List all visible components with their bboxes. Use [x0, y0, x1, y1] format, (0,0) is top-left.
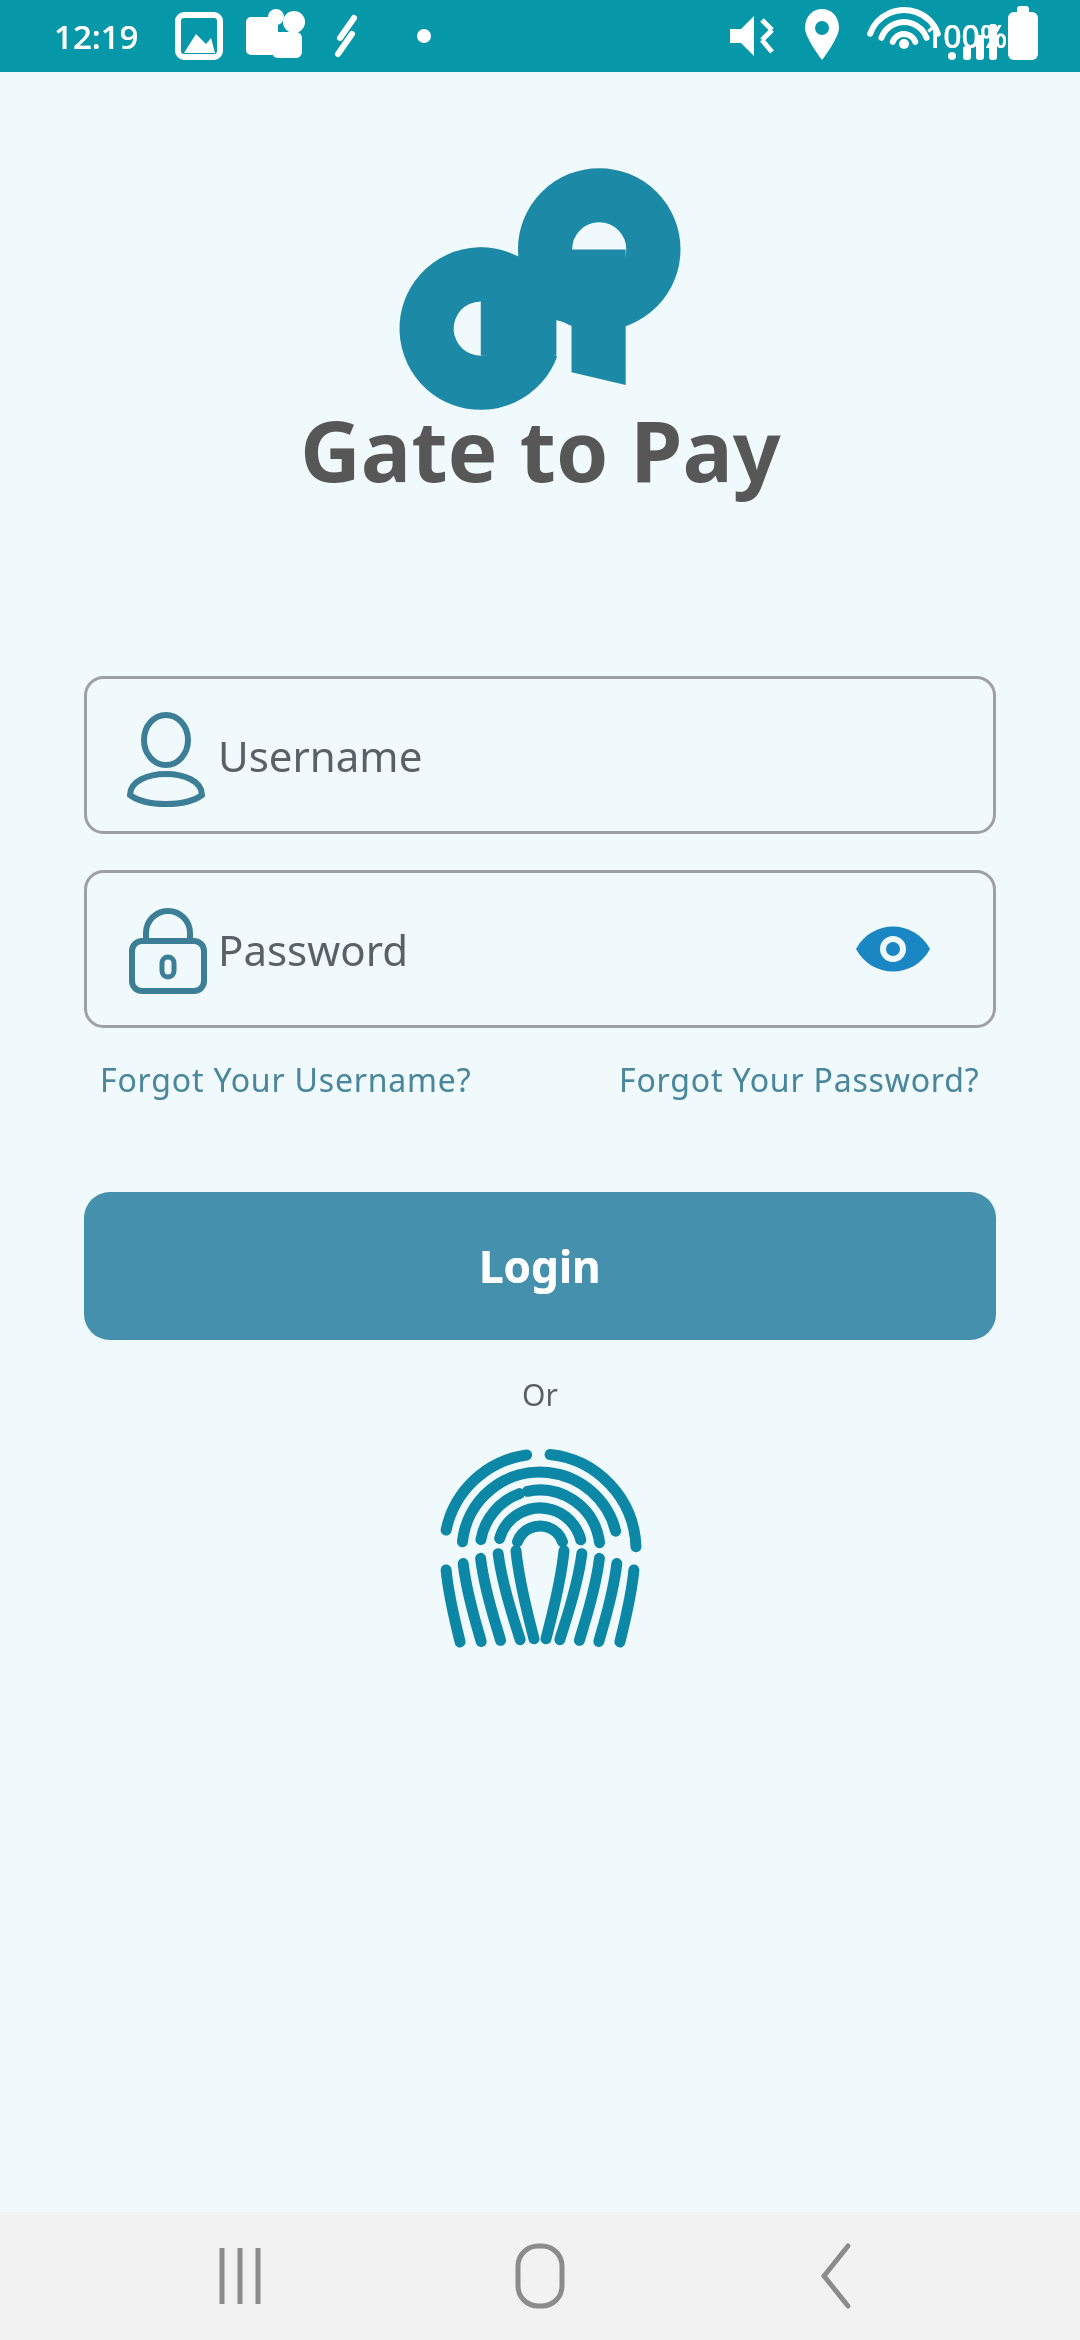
button[interactable]: Recent apps — [180, 2216, 300, 2336]
button[interactable]: Forgot Your Password? — [619, 1052, 980, 1108]
button[interactable]: Forgot Your Username? — [100, 1052, 472, 1108]
staticText: 100% — [925, 14, 1008, 58]
button[interactable]: Login — [84, 1192, 996, 1340]
staticText: Forgot Your Username? — [100, 1058, 472, 1102]
staticText: Username — [218, 727, 423, 784]
button[interactable]: Login with fingerprint — [429, 1433, 651, 1655]
staticText: Password — [218, 921, 408, 978]
staticText: Login — [479, 1236, 601, 1296]
button[interactable]: Back — [780, 2216, 900, 2336]
staticText: 12:19 — [54, 14, 139, 59]
button[interactable]: Username — [84, 676, 996, 834]
button[interactable]: Home — [480, 2216, 600, 2336]
staticText: Or — [522, 1374, 558, 1415]
staticText: Gate to Pay — [300, 392, 781, 506]
button[interactable]: Password — [84, 870, 996, 1028]
staticText: Forgot Your Password? — [619, 1058, 980, 1102]
